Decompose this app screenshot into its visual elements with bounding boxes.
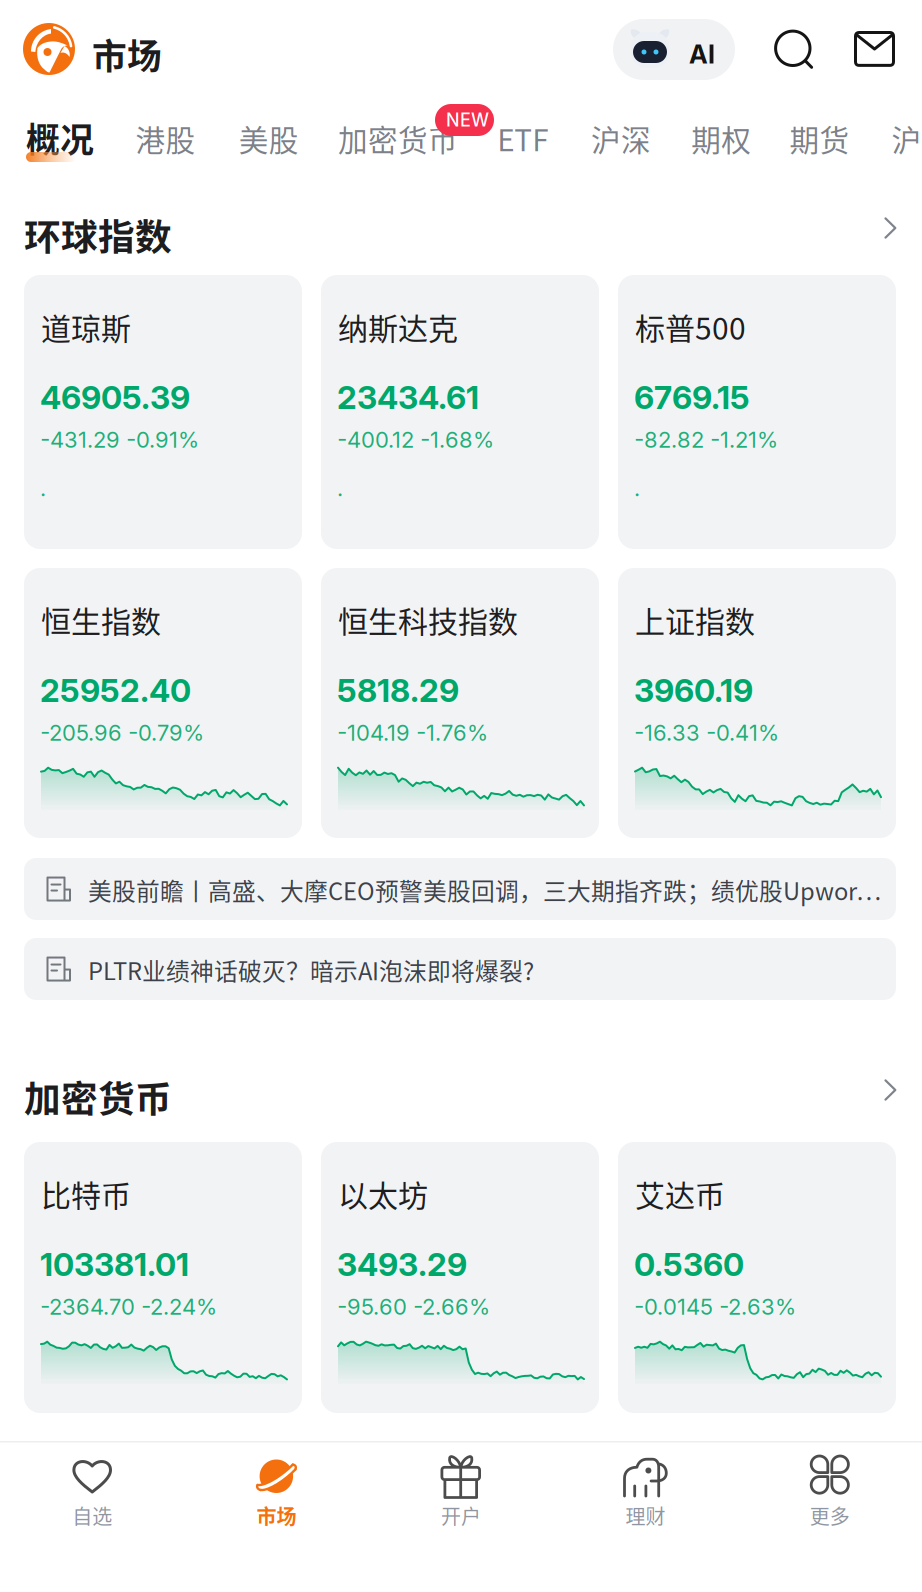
button[interactable]: Messages [846, 21, 902, 77]
button[interactable]: 上证指数 [618, 568, 896, 838]
button[interactable]: 标普500 [618, 275, 896, 549]
staticText: 5818.29 [337, 671, 459, 710]
staticText: · [337, 481, 343, 508]
button[interactable]: 概况 [26, 113, 94, 162]
staticText: AI [689, 39, 715, 70]
staticText: 美股前瞻丨高盛、大摩CEO预警美股回调，三大期指齐跌；绩优股Upwor… [88, 873, 881, 907]
button[interactable]: 沪深 [591, 117, 651, 160]
staticText: 环球指数 [24, 208, 172, 261]
button[interactable]: Search [767, 21, 823, 77]
staticText: 上证指数 [635, 598, 755, 641]
button[interactable]: 理财 [553, 1443, 738, 1553]
button[interactable]: 恒生指数 [24, 568, 302, 838]
staticText: -205.96 -0.79% [40, 719, 204, 746]
staticText: 纳斯达克 [338, 305, 458, 348]
staticText: 加密货币 [338, 117, 458, 160]
button[interactable]: 开户 [369, 1443, 553, 1553]
staticText: 23434.61 [337, 378, 479, 417]
staticText: 恒生指数 [41, 598, 161, 641]
staticText: 标普500 [635, 305, 746, 348]
button[interactable]: 市场 [184, 1443, 369, 1553]
button[interactable]: 沪 [892, 117, 922, 160]
button[interactable]: 期权 [691, 117, 751, 160]
staticText: · [40, 481, 46, 508]
staticText: 艾达币 [635, 1172, 725, 1215]
staticText: 道琼斯 [41, 305, 131, 348]
staticText: NEW [446, 109, 489, 131]
button[interactable]: 道琼斯 [24, 275, 302, 549]
staticText: · [634, 481, 640, 508]
button[interactable]: 更多 [738, 1443, 922, 1553]
staticText: 市场 [257, 1501, 297, 1530]
button[interactable]: 港股 [135, 117, 195, 160]
staticText: PLTR业绩神话破灭？暗示AI泡沫即将爆裂? [88, 953, 534, 987]
staticText: 6769.15 [634, 378, 750, 417]
button[interactable]: PLTR业绩神话破灭？暗示AI泡沫即将爆裂? [24, 938, 896, 1000]
staticText: 市场 [92, 29, 162, 79]
staticText: 恒生科技指数 [338, 598, 518, 641]
staticText: 103381.01 [40, 1245, 189, 1284]
staticText: 25952.40 [40, 671, 191, 710]
staticText: 3960.19 [634, 671, 753, 710]
button[interactable]: AI [613, 19, 735, 80]
staticText: 以太坊 [338, 1172, 428, 1215]
button[interactable]: 期货 [790, 117, 850, 160]
staticText: 理财 [625, 1501, 665, 1530]
staticText: 美股 [239, 117, 299, 160]
staticText: -82.82 -1.21% [634, 426, 778, 453]
button[interactable]: ETF [497, 117, 548, 160]
button[interactable]: 美股前瞻丨高盛、大摩CEO预警美股回调，三大期指齐跌；绩优股Upwor… [24, 858, 896, 920]
staticText: 更多 [810, 1501, 850, 1530]
staticText: -0.0145 -2.63% [634, 1293, 796, 1320]
staticText: ETF [497, 117, 548, 160]
button[interactable]: 美股 [239, 117, 299, 160]
button[interactable]: 加密货币 [24, 1070, 896, 1116]
staticText: 46905.39 [40, 378, 190, 417]
button[interactable]: 加密货币 [338, 117, 458, 160]
staticText: -16.33 -0.41% [634, 719, 779, 746]
staticText: 开户 [441, 1501, 481, 1530]
staticText: -104.19 -1.76% [337, 719, 488, 746]
staticText: 概况 [26, 113, 94, 162]
staticText: 期权 [691, 117, 751, 160]
button[interactable]: 恒生科技指数 [321, 568, 599, 838]
staticText: -2364.70 -2.24% [40, 1293, 217, 1320]
button[interactable]: 以太坊 [321, 1142, 599, 1413]
staticText: 沪深 [591, 117, 651, 160]
staticText: 加密货币 [24, 1070, 172, 1123]
staticText: -400.12 -1.68% [337, 426, 494, 453]
button[interactable]: 环球指数 [24, 208, 896, 254]
staticText: 比特币 [41, 1172, 131, 1215]
button[interactable]: 纳斯达克 [321, 275, 599, 549]
button[interactable]: 艾达币 [618, 1142, 896, 1413]
staticText: -431.29 -0.91% [40, 426, 199, 453]
button[interactable]: 比特币 [24, 1142, 302, 1413]
staticText: 0.5360 [634, 1245, 744, 1284]
staticText: 港股 [135, 117, 195, 160]
button[interactable]: 自选 [0, 1443, 184, 1553]
staticText: 3493.29 [337, 1245, 467, 1284]
staticText: 期货 [790, 117, 850, 160]
staticText: 自选 [72, 1501, 112, 1530]
staticText: -95.60 -2.66% [337, 1293, 490, 1320]
staticText: 沪 [892, 117, 922, 160]
